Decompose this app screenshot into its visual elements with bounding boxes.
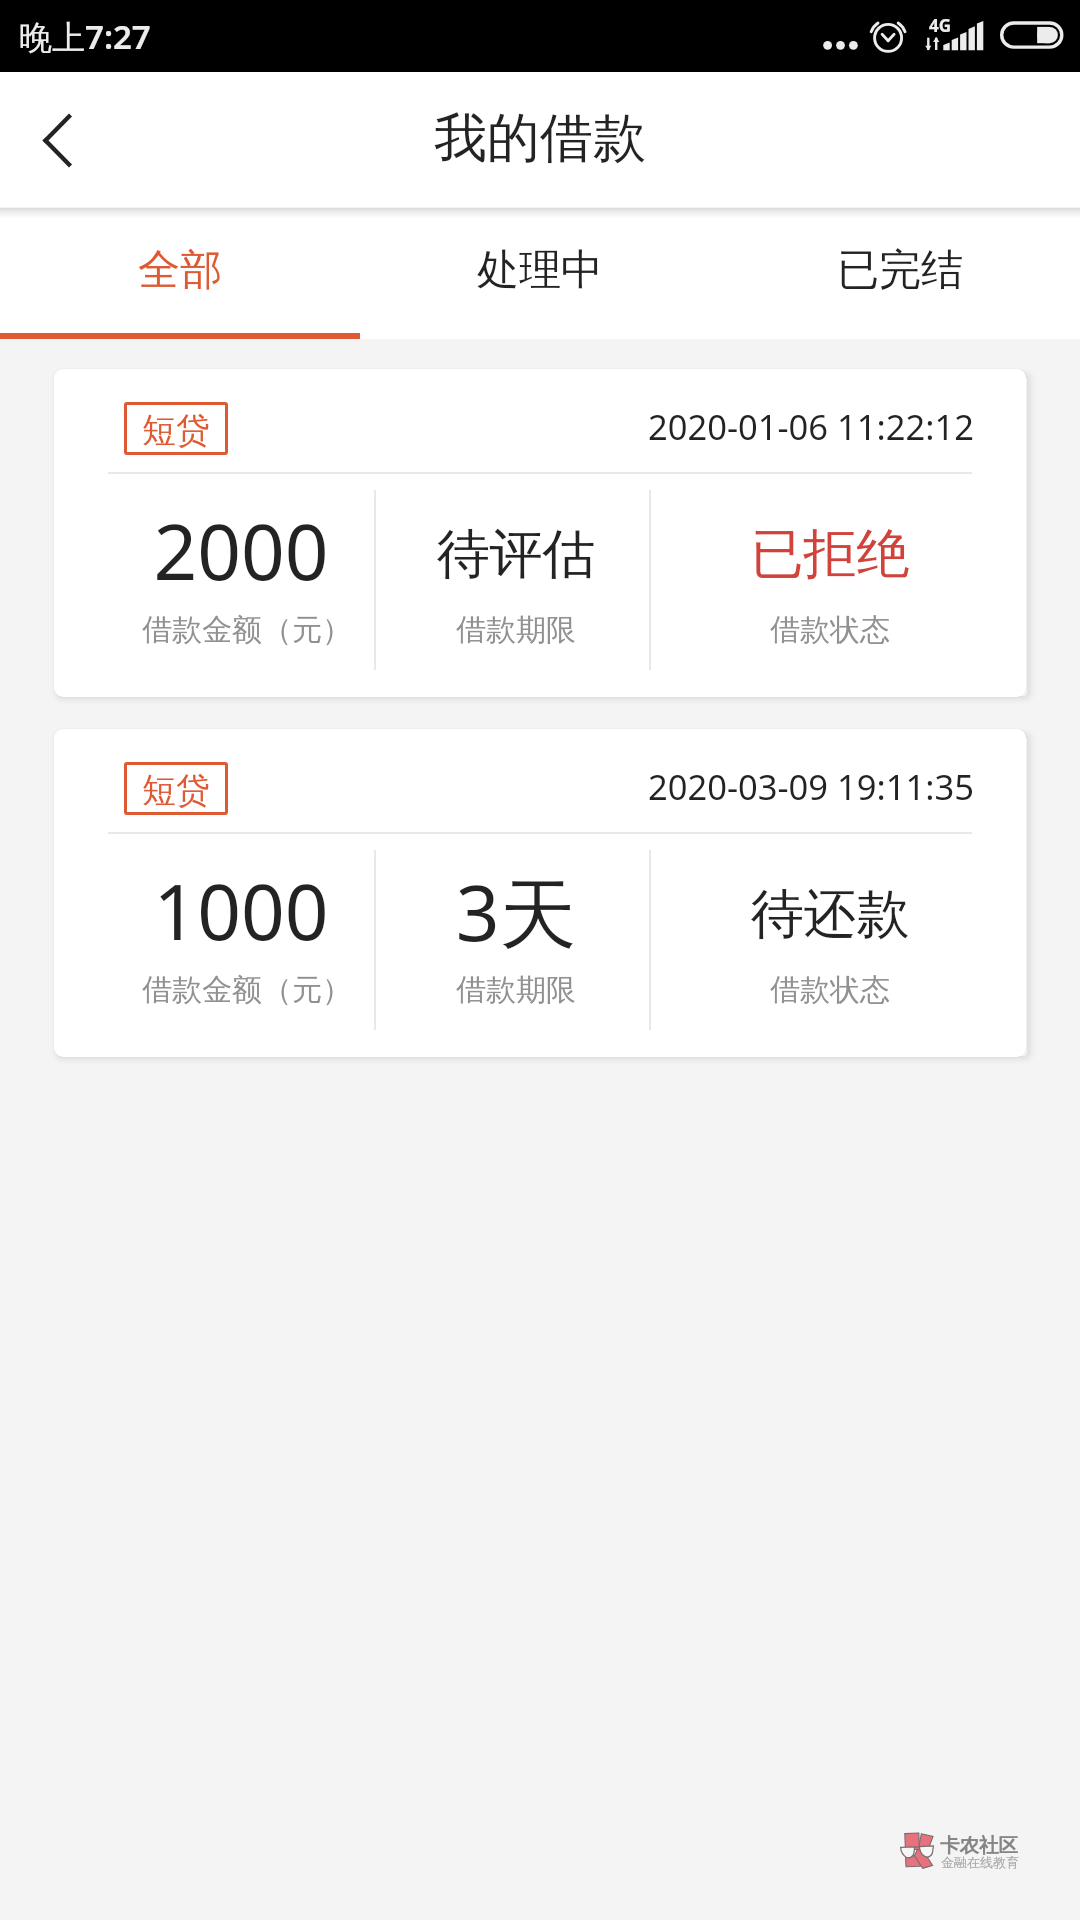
staticText: 短贷 — [142, 409, 210, 452]
staticText: 我的借款 — [434, 105, 646, 172]
staticText: 借款金额（元） — [54, 971, 447, 1009]
staticText: 待还款 — [630, 881, 1026, 948]
staticText: 已拒绝 — [630, 521, 1026, 588]
button[interactable]: 全部 — [0, 208, 360, 339]
staticText: 待评估 — [316, 521, 716, 588]
staticText: 金融在线教育 — [941, 1854, 1019, 1870]
staticText: 2020-03-09 19:11:35 — [648, 763, 974, 810]
button[interactable]: 已完结 — [720, 208, 1080, 339]
staticText: 借款期限 — [316, 611, 716, 649]
staticText: 短贷 — [142, 769, 210, 812]
staticText: 借款状态 — [630, 611, 1026, 649]
staticText: 借款金额（元） — [54, 611, 447, 649]
button[interactable]: 处理中 — [360, 208, 720, 339]
staticText: 2020-01-06 11:22:12 — [648, 403, 974, 450]
staticText: 处理中 — [477, 244, 603, 297]
staticText: 借款期限 — [316, 971, 716, 1009]
staticText: 借款状态 — [630, 971, 1026, 1009]
staticText: 3天 — [316, 859, 716, 963]
staticText: 全部 — [138, 244, 222, 297]
staticText: 已完结 — [837, 244, 963, 297]
staticText: 2000 — [54, 498, 441, 602]
staticText: 4G — [929, 14, 952, 37]
button[interactable]: 短贷 — [54, 369, 1026, 697]
button[interactable]: Back — [0, 72, 110, 207]
staticText: 1000 — [54, 858, 441, 962]
staticText: 卡农社区 — [940, 1833, 1018, 1858]
staticText: 晚上7:27 — [19, 14, 151, 59]
button[interactable]: 短贷 — [54, 729, 1026, 1057]
